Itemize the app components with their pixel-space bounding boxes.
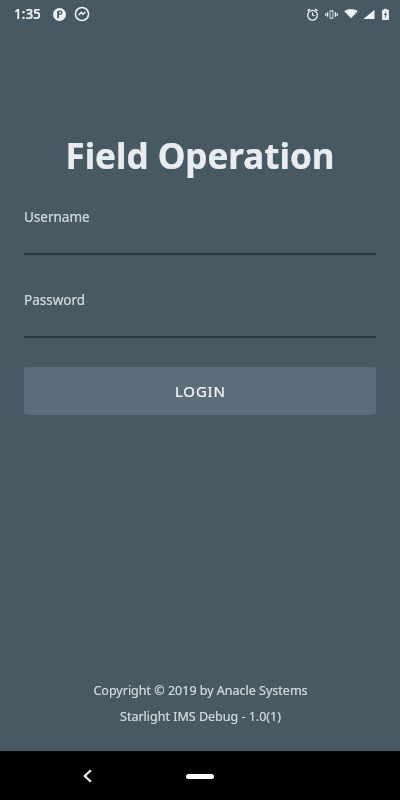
staticText: Username <box>24 208 90 226</box>
staticText: Starlight IMS Debug - 1.0(1) <box>120 708 281 725</box>
staticText: Password <box>24 291 86 309</box>
button[interactable]: LOGIN <box>24 367 376 415</box>
staticText: Field Operation <box>65 132 335 180</box>
staticText: Copyright © 2019 by Anacle Systems <box>93 682 308 699</box>
button[interactable]: Back <box>68 756 108 796</box>
button[interactable]: Home <box>170 761 230 791</box>
staticText: LOGIN <box>175 381 226 401</box>
staticText: 1:35 <box>14 5 41 23</box>
